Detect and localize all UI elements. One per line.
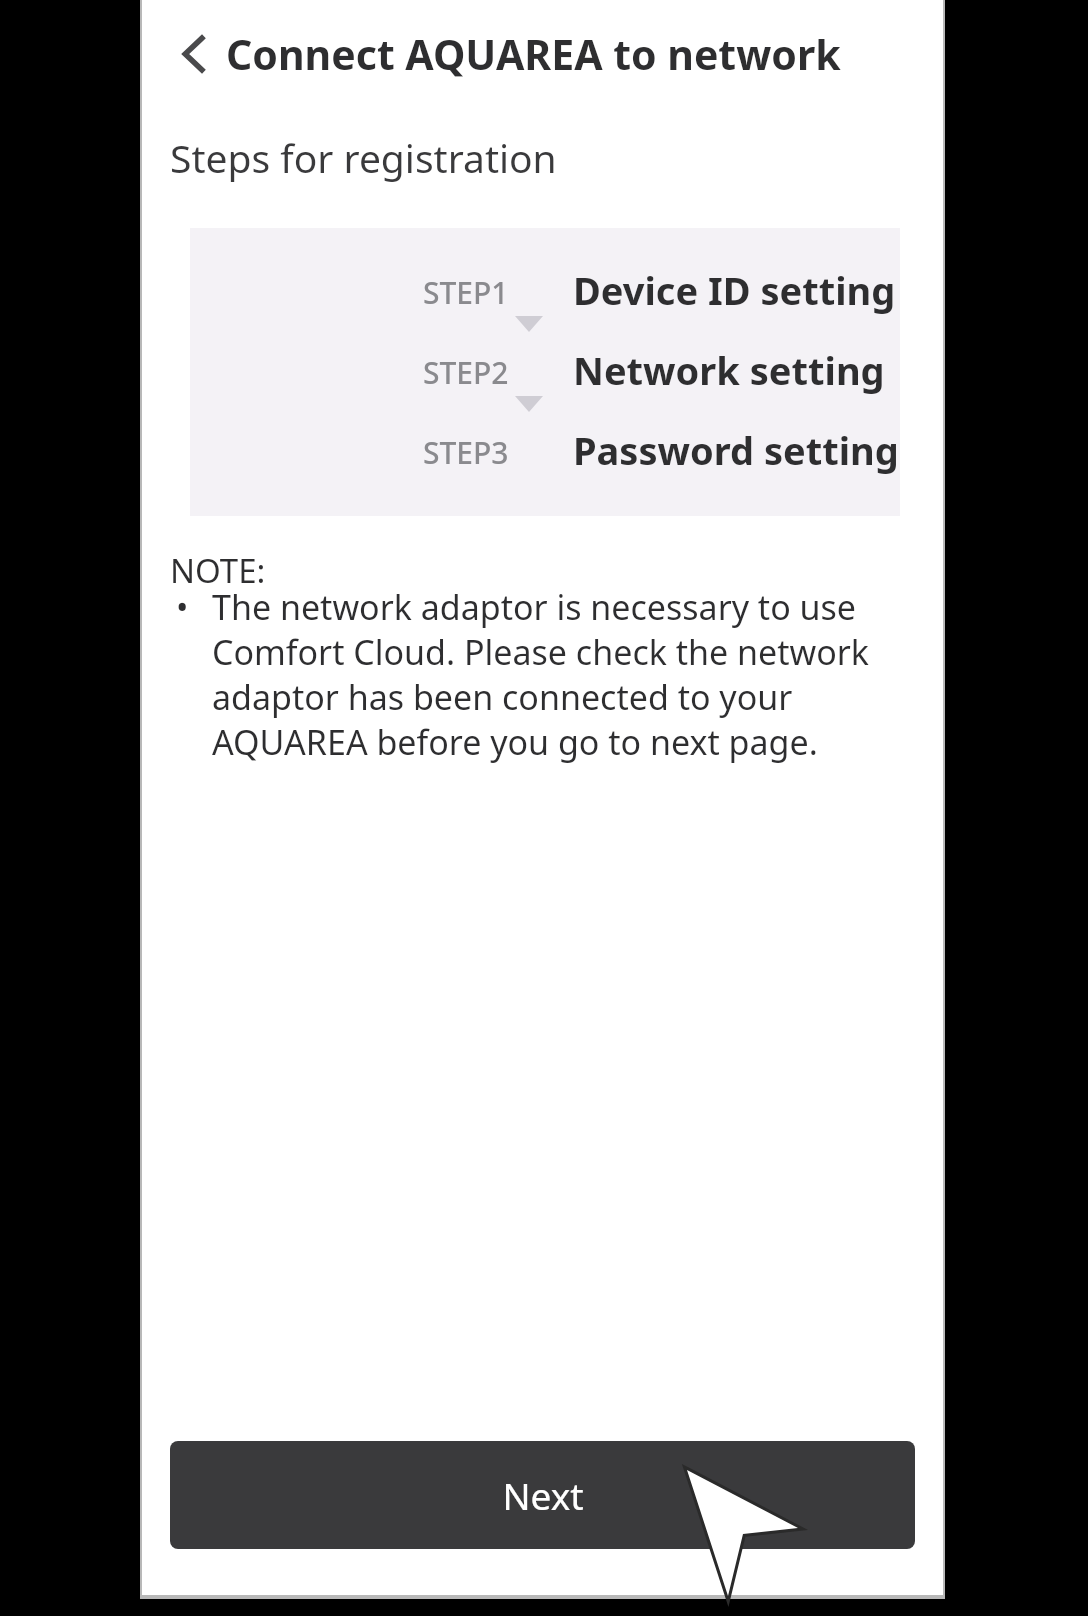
staticText: NOTE: bbox=[170, 548, 266, 593]
staticText: Next bbox=[502, 1470, 584, 1520]
button[interactable]: Next bbox=[170, 1441, 915, 1549]
staticText: STEP2 bbox=[423, 352, 509, 393]
staticText: Connect AQUAREA to network bbox=[226, 26, 841, 82]
staticText: • bbox=[176, 584, 212, 629]
staticText: Steps for registration bbox=[170, 131, 557, 184]
staticText: Password setting bbox=[573, 424, 899, 476]
staticText: The network adaptor is necessary to use … bbox=[212, 584, 906, 765]
staticText: STEP3 bbox=[423, 432, 509, 473]
staticText: Network setting bbox=[573, 344, 885, 396]
staticText: STEP1 bbox=[423, 272, 509, 313]
staticText: Device ID setting bbox=[573, 264, 896, 316]
button[interactable]: Back bbox=[158, 18, 230, 90]
